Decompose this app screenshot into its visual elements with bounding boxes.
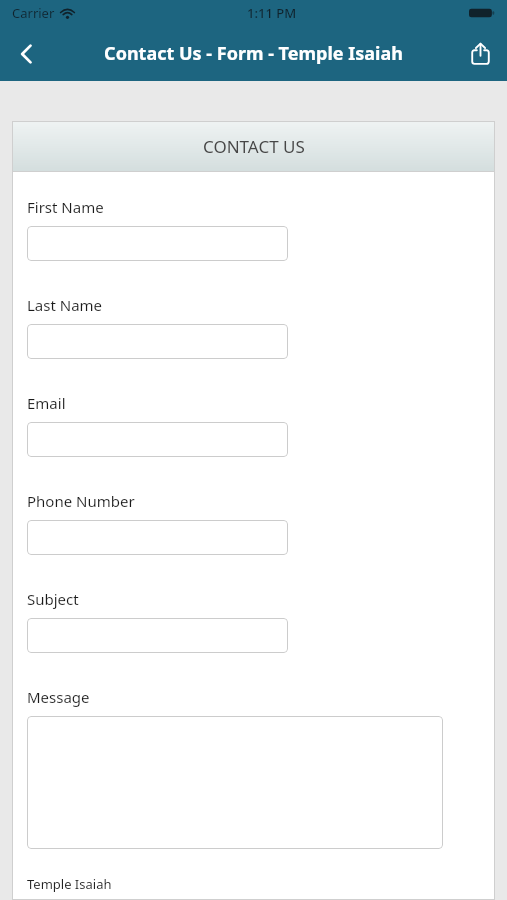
button[interactable]: Phone Number <box>27 520 288 555</box>
button[interactable]: Message <box>27 716 443 849</box>
button[interactable]: Email <box>27 422 288 457</box>
button[interactable]: First Name <box>27 226 288 261</box>
button[interactable]: Subject <box>27 618 288 653</box>
staticText: First Name <box>27 197 104 217</box>
staticText: Carrier <box>12 4 55 22</box>
staticText: Message <box>27 687 90 707</box>
staticText: CONTACT US <box>203 135 305 158</box>
staticText: Last Name <box>27 295 103 315</box>
staticText: Subject <box>27 589 79 609</box>
button[interactable]: Last Name <box>27 324 288 359</box>
staticText: Phone Number <box>27 491 135 511</box>
staticText: 1:11 PM <box>247 4 297 22</box>
staticText: Temple Isaiah <box>27 875 112 893</box>
button[interactable]: Share <box>453 26 507 81</box>
button[interactable]: Back <box>0 26 54 81</box>
staticText: Email <box>27 393 66 413</box>
staticText: Contact Us - Form - Temple Isaiah <box>104 41 403 66</box>
